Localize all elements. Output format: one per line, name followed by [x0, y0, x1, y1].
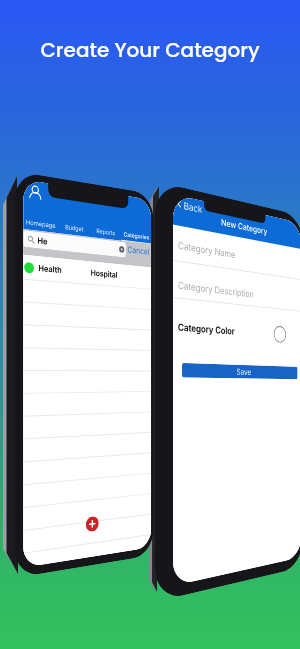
staticText: Category Name: [178, 239, 236, 260]
staticText: He: [37, 236, 48, 246]
button[interactable]: He: [23, 230, 126, 258]
staticText: Hospital: [91, 268, 117, 280]
button[interactable]: Add category: [86, 516, 99, 532]
staticText: Category Description: [178, 279, 254, 299]
button[interactable]: Categories: [121, 231, 151, 244]
staticText: Cancel: [127, 244, 150, 257]
staticText: Save: [236, 366, 251, 377]
staticText: Create Your Category: [0, 36, 300, 64]
staticText: Categories: [124, 231, 150, 241]
staticText: Back: [184, 199, 203, 215]
staticText: Budget: [65, 223, 83, 233]
button[interactable]: Reports: [90, 227, 121, 241]
other: Profile: [28, 184, 43, 203]
button[interactable]: Cancel: [126, 241, 151, 259]
staticText: New Category: [221, 217, 268, 236]
staticText: Reports: [96, 227, 115, 237]
staticText: Health: [38, 263, 62, 275]
button[interactable]: Back: [175, 195, 203, 216]
button[interactable]: Save: [182, 363, 298, 379]
button[interactable]: Health: [24, 255, 150, 289]
button[interactable]: Category Color: [178, 321, 235, 336]
button[interactable]: Homepage: [23, 218, 57, 233]
button[interactable]: Budget: [57, 222, 90, 237]
other: Clear search: [119, 246, 124, 253]
button[interactable]: Pick color: [273, 325, 286, 343]
staticText: Homepage: [26, 218, 56, 230]
